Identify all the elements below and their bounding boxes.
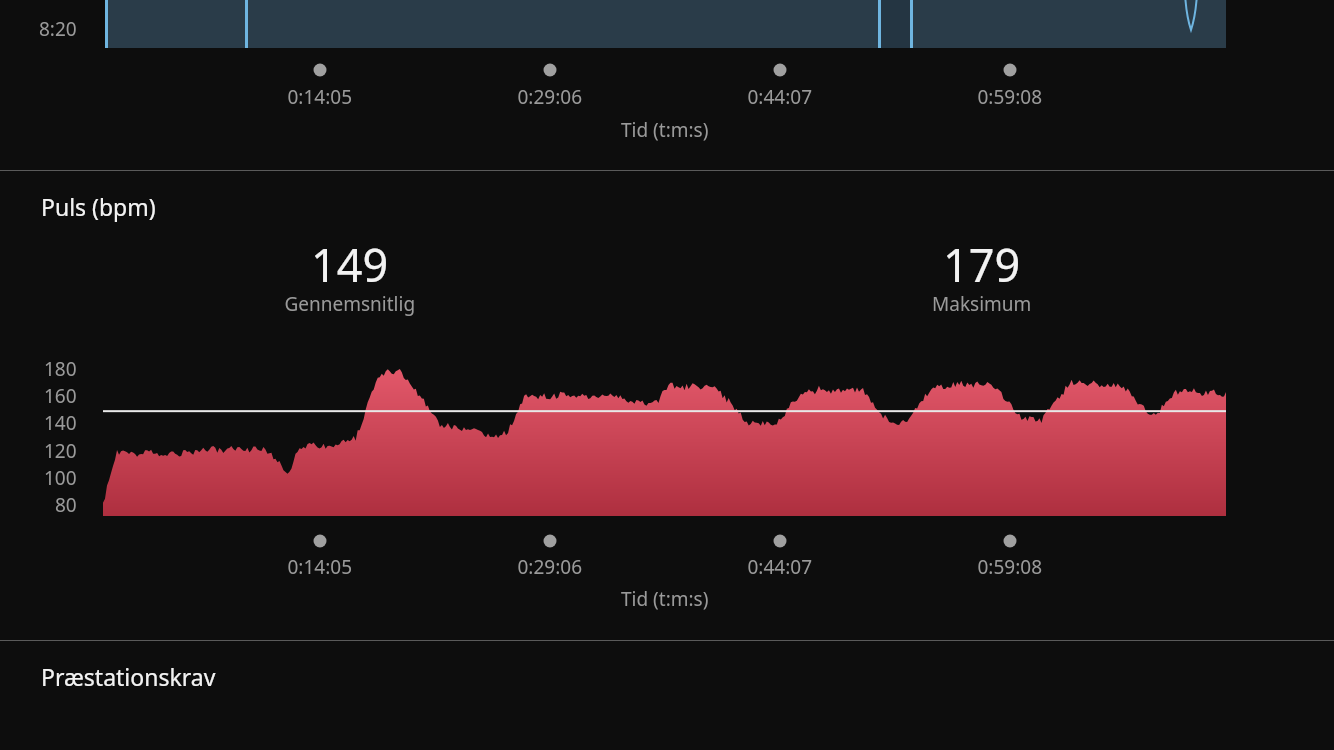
- button[interactable]: [0, 0, 1334, 750]
